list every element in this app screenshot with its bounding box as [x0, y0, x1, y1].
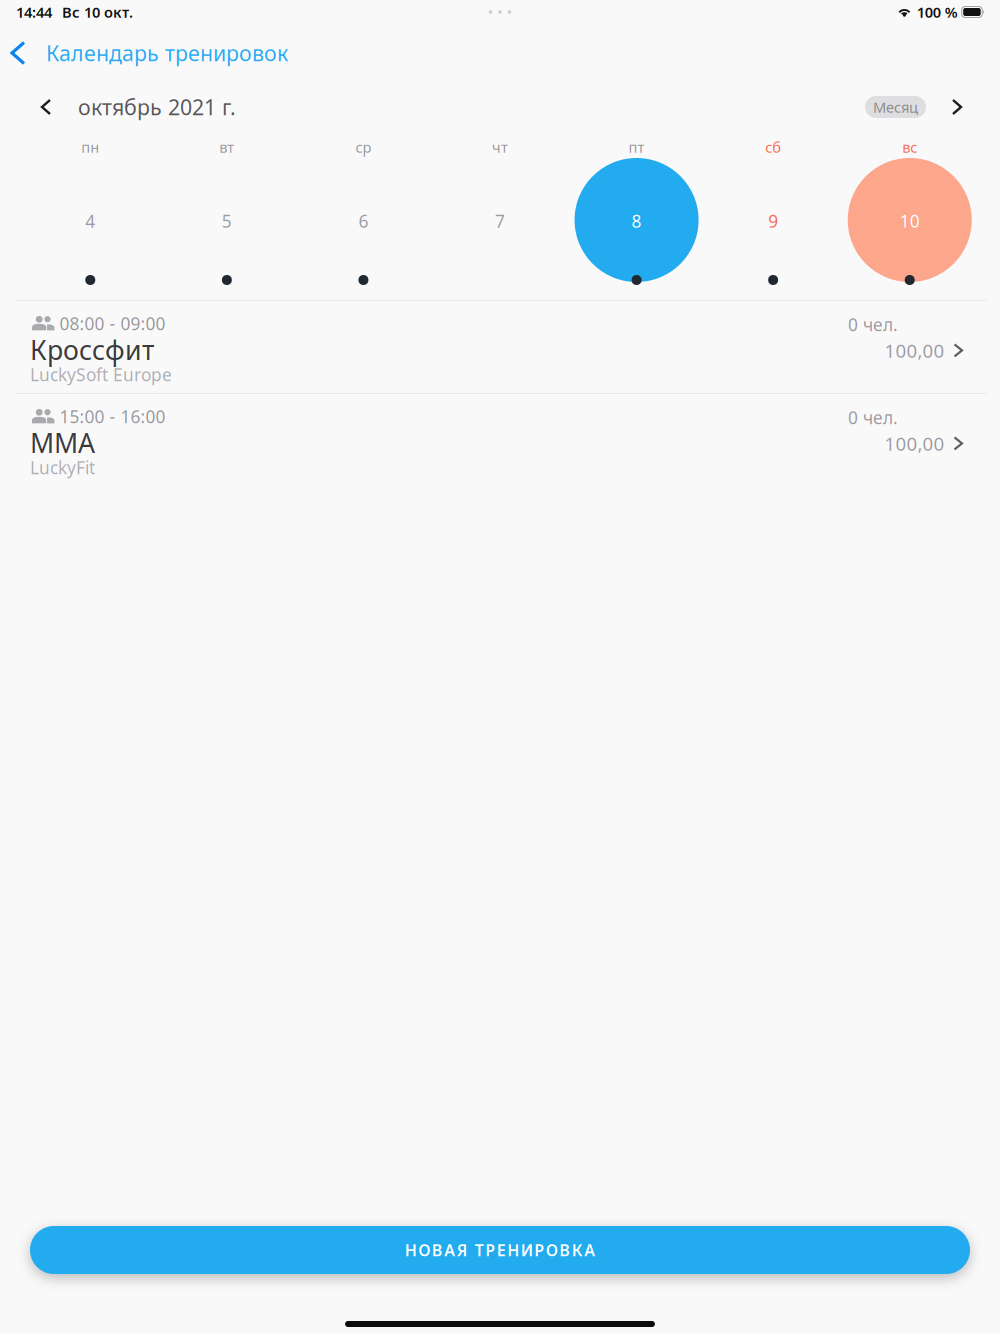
- staticText: сб: [765, 137, 781, 157]
- staticText: 08:00 - 09:00: [60, 312, 166, 335]
- staticText: LuckySoft Europe: [30, 363, 172, 386]
- staticText: вс: [902, 137, 917, 157]
- staticText: 8: [632, 209, 642, 232]
- button[interactable]: НОВАЯ ТРЕНИРОВКА: [30, 1226, 970, 1274]
- button[interactable]: пт 8: [568, 136, 705, 300]
- staticText: Кроссфит: [30, 332, 154, 367]
- staticText: 7: [495, 209, 505, 232]
- staticText: 0 чел.: [848, 406, 898, 429]
- staticText: Календарь тренировок: [46, 39, 288, 67]
- staticText: Месяц: [873, 97, 918, 117]
- staticText: 100 %: [917, 2, 958, 22]
- button[interactable]: 15:00 - 16:00: [0, 394, 1000, 487]
- button[interactable]: Календарь тренировок: [0, 24, 288, 78]
- staticText: 15:00 - 16:00: [60, 405, 166, 428]
- button[interactable]: вт 5: [159, 136, 295, 300]
- button[interactable]: 08:00 - 09:00: [0, 301, 1000, 394]
- button[interactable]: сб 9: [705, 136, 841, 300]
- staticText: пт: [629, 137, 645, 157]
- button[interactable]: Предыдущий месяц: [0, 88, 78, 126]
- button[interactable]: Следующий месяц: [926, 88, 1000, 126]
- staticText: MMA: [30, 425, 95, 460]
- button[interactable]: Месяц: [865, 96, 926, 118]
- staticText: 10: [900, 209, 920, 232]
- staticText: вт: [219, 137, 234, 157]
- button[interactable]: вс 10: [841, 136, 978, 300]
- button[interactable]: чт 7: [432, 136, 568, 300]
- staticText: 9: [768, 209, 778, 232]
- staticText: 4: [85, 209, 95, 232]
- staticText: 100,00: [884, 338, 944, 363]
- staticText: LuckyFit: [30, 456, 95, 479]
- staticText: НОВАЯ ТРЕНИРОВКА: [405, 1239, 595, 1261]
- staticText: 100,00: [884, 431, 944, 456]
- staticText: Вс 10 окт.: [62, 2, 133, 22]
- staticText: ср: [355, 137, 371, 157]
- staticText: октябрь 2021 г.: [78, 93, 236, 121]
- button[interactable]: пн 4: [22, 136, 159, 300]
- staticText: чт: [492, 137, 508, 157]
- staticText: 6: [358, 209, 368, 232]
- button[interactable]: ср 6: [295, 136, 432, 300]
- staticText: 5: [222, 209, 232, 232]
- staticText: 14:44: [16, 2, 52, 22]
- staticText: пн: [81, 137, 99, 157]
- staticText: 0 чел.: [848, 313, 898, 336]
